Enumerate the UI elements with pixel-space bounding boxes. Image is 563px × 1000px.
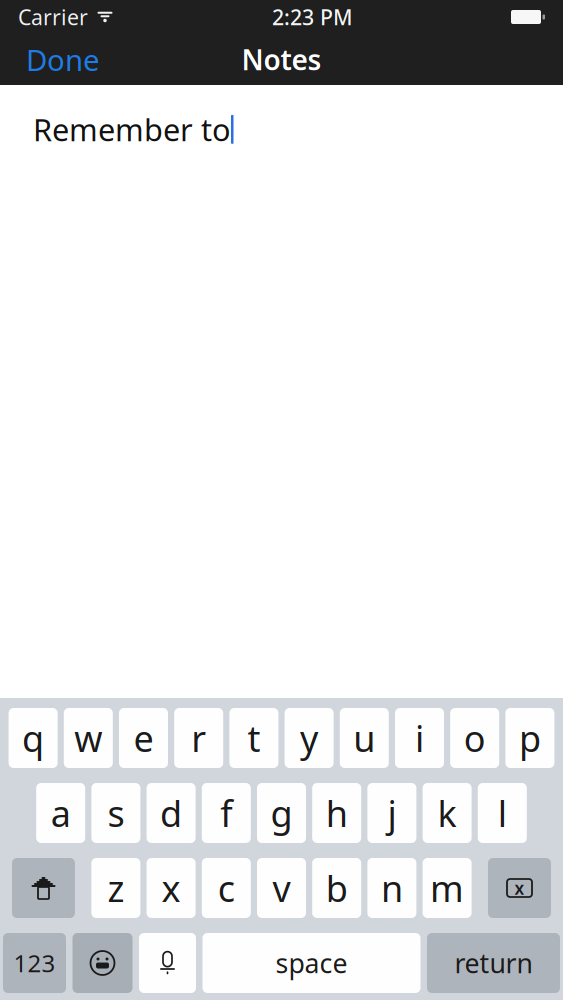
- staticText: m: [430, 864, 464, 912]
- staticText: y: [300, 714, 318, 762]
- staticText: 2:23 PM: [272, 3, 353, 31]
- staticText: k: [438, 789, 457, 837]
- button[interactable]: r: [174, 708, 223, 768]
- button[interactable]: w: [64, 708, 113, 768]
- staticText: t: [247, 714, 260, 762]
- staticText: return: [454, 945, 532, 981]
- button[interactable]: 123: [3, 933, 66, 993]
- staticText: space: [275, 945, 347, 981]
- button[interactable]: Shift: [12, 858, 75, 918]
- button[interactable]: i: [395, 708, 444, 768]
- staticText: n: [381, 864, 403, 912]
- staticText: g: [270, 789, 292, 837]
- button[interactable]: v: [257, 858, 306, 918]
- staticText: x: [514, 876, 524, 899]
- staticText: f: [220, 789, 232, 837]
- button[interactable]: h: [312, 783, 361, 843]
- button[interactable]: Dictate: [139, 933, 196, 993]
- button[interactable]: n: [367, 858, 416, 918]
- button[interactable]: s: [91, 783, 140, 843]
- staticText: 123: [13, 947, 55, 979]
- button[interactable]: return: [427, 933, 560, 993]
- button[interactable]: c: [202, 858, 251, 918]
- button[interactable]: y: [285, 708, 334, 768]
- button[interactable]: u: [340, 708, 389, 768]
- staticText: Remember to: [33, 109, 231, 150]
- button[interactable]: f: [202, 783, 251, 843]
- staticText: Notes: [241, 41, 321, 78]
- staticText: i: [415, 714, 424, 762]
- staticText: u: [353, 714, 375, 762]
- button[interactable]: x: [147, 858, 196, 918]
- button[interactable]: e: [119, 708, 168, 768]
- staticText: Carrier: [18, 3, 88, 31]
- staticText: Done: [26, 40, 100, 79]
- button[interactable]: Done: [16, 32, 110, 87]
- staticText: z: [107, 864, 124, 912]
- staticText: r: [191, 714, 206, 762]
- staticText: l: [498, 789, 507, 837]
- button[interactable]: a: [36, 783, 85, 843]
- button[interactable]: z: [91, 858, 140, 918]
- staticText: b: [326, 864, 348, 912]
- staticText: q: [22, 714, 44, 762]
- staticText: v: [272, 864, 290, 912]
- button[interactable]: b: [312, 858, 361, 918]
- staticText: s: [107, 789, 124, 837]
- button[interactable]: d: [147, 783, 196, 843]
- staticText: h: [326, 789, 348, 837]
- button[interactable]: l: [478, 783, 527, 843]
- button[interactable]: space: [202, 933, 420, 993]
- button[interactable]: o: [450, 708, 499, 768]
- staticText: x: [162, 864, 181, 912]
- staticText: d: [160, 789, 182, 837]
- staticText: w: [74, 714, 102, 762]
- button[interactable]: j: [367, 783, 416, 843]
- button[interactable]: Delete: [488, 858, 551, 918]
- button[interactable]: q: [9, 708, 58, 768]
- button[interactable]: k: [423, 783, 472, 843]
- button[interactable]: t: [229, 708, 278, 768]
- staticText: c: [218, 864, 235, 912]
- button[interactable]: p: [505, 708, 554, 768]
- staticText: j: [387, 789, 396, 837]
- button[interactable]: Emoji: [72, 933, 132, 993]
- staticText: p: [519, 714, 541, 762]
- button[interactable]: m: [423, 858, 472, 918]
- staticText: e: [133, 714, 153, 762]
- button[interactable]: g: [257, 783, 306, 843]
- staticText: o: [464, 714, 486, 762]
- staticText: a: [51, 789, 71, 837]
